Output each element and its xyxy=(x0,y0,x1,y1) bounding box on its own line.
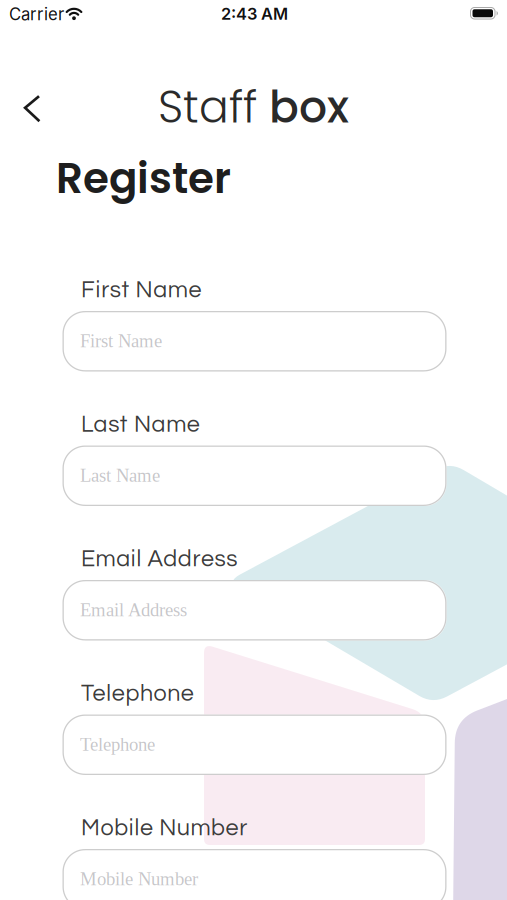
staticText: Staff box xyxy=(158,77,349,137)
button[interactable]: Last Name xyxy=(62,445,446,506)
staticText: Last Name xyxy=(81,412,200,436)
staticText: 2:43 AM xyxy=(221,4,288,24)
staticText: First Name xyxy=(80,330,162,351)
staticText: Mobile Number xyxy=(80,868,198,889)
staticText: Carrier xyxy=(9,4,64,24)
staticText: Register xyxy=(56,149,231,208)
button[interactable]: Back xyxy=(23,93,47,124)
staticText: First Name xyxy=(81,278,201,302)
button[interactable]: Mobile Number xyxy=(62,849,446,900)
button[interactable]: Email Address xyxy=(62,580,446,640)
staticText: Telephone xyxy=(81,681,194,705)
staticText: Email Address xyxy=(80,599,187,620)
staticText: Last Name xyxy=(80,465,160,486)
staticText: Mobile Number xyxy=(81,816,247,840)
staticText: Telephone xyxy=(80,734,155,755)
staticText: Email Address xyxy=(81,547,237,571)
button[interactable]: First Name xyxy=(62,311,446,371)
button[interactable]: Telephone xyxy=(62,714,446,775)
